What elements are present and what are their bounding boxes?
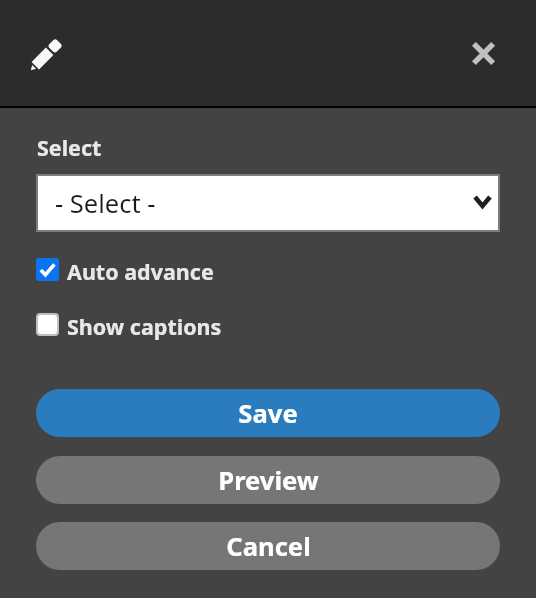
staticText: Preview [218,463,319,498]
button[interactable]: Auto advance [36,255,500,284]
staticText: Cancel [226,529,311,564]
staticText: Show captions [67,312,222,341]
button[interactable]: Edit [21,32,69,80]
staticText: Auto advance [67,257,214,286]
staticText: Save [238,396,298,431]
staticText: - Select - [55,186,156,221]
button[interactable]: - Select - [38,176,498,230]
button[interactable]: Close [461,31,505,75]
button[interactable]: Cancel [36,522,500,570]
button[interactable]: Show captions [36,310,500,339]
button[interactable]: Preview [36,456,500,504]
staticText: Select [37,133,102,162]
button[interactable]: Save [36,389,500,437]
